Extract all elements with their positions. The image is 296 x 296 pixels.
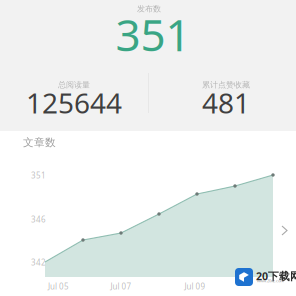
staticText: 346 xyxy=(31,214,46,225)
staticText: 351 xyxy=(31,170,46,181)
button[interactable]: Next xyxy=(274,218,295,243)
staticText: Jul 05 xyxy=(48,281,69,292)
staticText: 342 xyxy=(31,257,46,268)
staticText: 发布数 xyxy=(137,4,161,14)
staticText: Jul 07 xyxy=(110,281,131,292)
staticText: 481 xyxy=(202,84,250,121)
staticText: 20下载网 xyxy=(256,269,296,283)
staticText: Jul 09 xyxy=(184,281,205,292)
staticText: 累计点赞收藏 xyxy=(202,80,250,90)
staticText: 125644 xyxy=(26,84,122,121)
staticText: 总阅读量 xyxy=(58,80,90,90)
staticText: www.20xz.com xyxy=(257,278,284,283)
staticText: 351 xyxy=(115,5,190,63)
staticText: 文章数 xyxy=(23,136,56,149)
